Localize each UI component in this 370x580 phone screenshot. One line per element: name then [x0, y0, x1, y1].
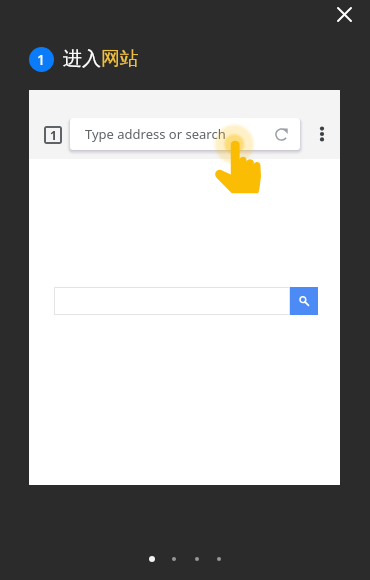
staticText: 1 [37, 50, 46, 69]
staticText: 1 [50, 127, 57, 143]
button[interactable]: Tabs [38, 120, 68, 150]
button[interactable]: Search [290, 287, 318, 315]
button[interactable]: 1 [29, 44, 139, 74]
button[interactable]: Search field [54, 287, 290, 315]
button[interactable]: Close [330, 0, 359, 29]
staticText: Type address or search [85, 125, 226, 143]
other: Reload [274, 127, 289, 142]
button[interactable]: Type address or search [70, 118, 300, 150]
other: Tap the address bar [205, 128, 267, 200]
button[interactable]: Page 1 of 4 [149, 549, 221, 568]
staticText: 进入网站 [63, 47, 139, 71]
button[interactable]: More options [309, 122, 333, 146]
